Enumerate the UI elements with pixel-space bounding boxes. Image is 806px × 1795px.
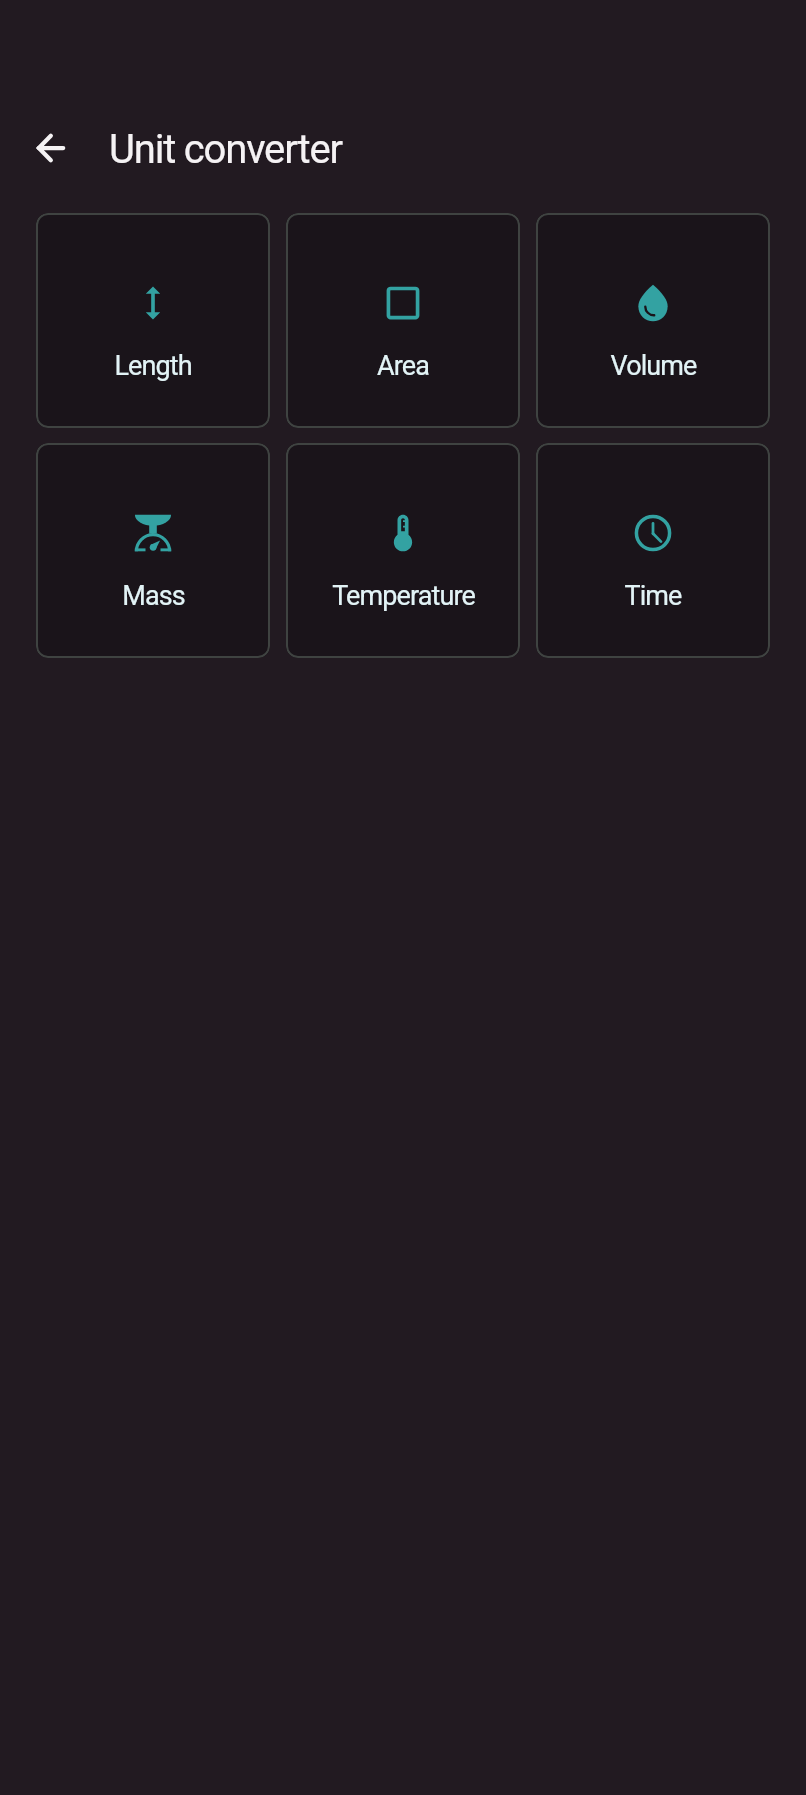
button[interactable]: Back — [23, 120, 79, 176]
staticText: Length — [114, 350, 192, 382]
staticText: Unit converter — [109, 126, 342, 173]
staticText: Time — [624, 580, 682, 612]
button[interactable]: Time — [536, 443, 770, 658]
button[interactable]: Temperature — [286, 443, 520, 658]
staticText: Temperature — [332, 580, 475, 612]
button[interactable]: Mass — [36, 443, 270, 658]
staticText: Volume — [610, 350, 697, 382]
staticText: Area — [377, 350, 429, 382]
button[interactable]: Length — [36, 213, 270, 428]
staticText: Mass — [122, 580, 185, 612]
button[interactable]: Area — [286, 213, 520, 428]
button[interactable]: Volume — [536, 213, 770, 428]
